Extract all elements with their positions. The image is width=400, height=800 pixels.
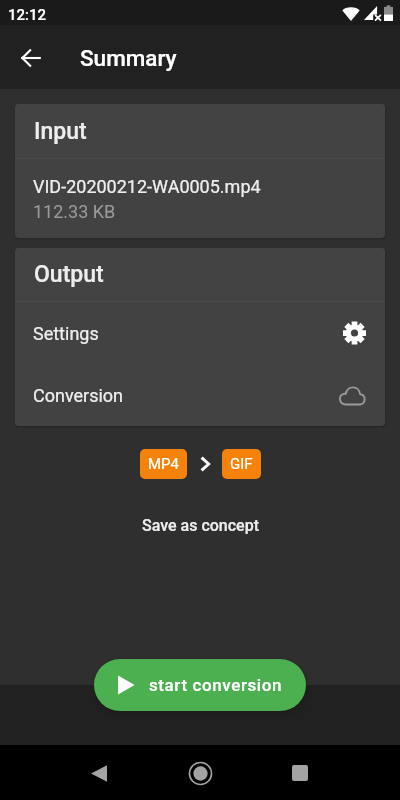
- button[interactable]: Back: [75, 749, 123, 797]
- staticText: MP4: [148, 455, 179, 473]
- staticText: Conversion: [33, 385, 338, 406]
- button[interactable]: Home: [176, 749, 224, 797]
- staticText: Summary: [80, 45, 177, 71]
- button[interactable]: Save as concept: [130, 511, 271, 540]
- staticText: Output: [34, 261, 104, 288]
- staticText: Save as concept: [142, 516, 259, 535]
- button[interactable]: Settings: [15, 302, 385, 364]
- staticText: 112.33 KB: [33, 201, 116, 222]
- button[interactable]: Conversion: [15, 364, 385, 426]
- staticText: VID-20200212-WA0005.mp4: [33, 176, 261, 197]
- staticText: GIF: [230, 455, 253, 473]
- button[interactable]: VID-20200212-WA0005.mp4: [15, 159, 385, 238]
- button[interactable]: start conversion: [94, 659, 306, 711]
- staticText: start conversion: [149, 675, 283, 695]
- button[interactable]: MP4: [140, 449, 187, 479]
- staticText: Settings: [33, 323, 343, 344]
- staticText: Input: [34, 118, 87, 145]
- button[interactable]: Recent apps: [276, 749, 324, 797]
- staticText: 12:12: [8, 6, 47, 24]
- button[interactable]: GIF: [222, 449, 261, 479]
- button[interactable]: Back: [9, 35, 53, 79]
